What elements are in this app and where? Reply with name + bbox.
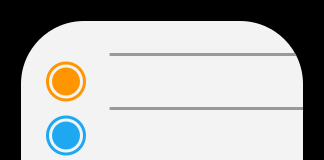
button[interactable]: Blue list colour	[46, 115, 86, 155]
button[interactable]: Orange list colour	[46, 61, 86, 101]
